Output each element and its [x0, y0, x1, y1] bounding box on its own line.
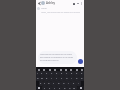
button[interactable]: 4: [49, 71, 54, 76]
button[interactable]: o: [74, 76, 79, 81]
button[interactable]: f: [51, 81, 56, 86]
staticText: Welcome to the world of full stack and t…: [40, 53, 75, 62]
staticText: Hello, we would like to invite you to jo…: [41, 11, 80, 14]
button[interactable]: i: [69, 76, 74, 81]
button[interactable]: r: [49, 76, 54, 81]
button[interactable]: s: [43, 81, 47, 86]
staticText: d: [48, 82, 50, 85]
button[interactable]: Keyboard tool: [42, 68, 45, 71]
button[interactable]: Call: [76, 2, 79, 5]
button[interactable]: v: [57, 86, 62, 90]
button[interactable]: d: [47, 81, 51, 86]
button[interactable]: Back: [37, 1, 41, 5]
button[interactable]: c: [52, 86, 57, 90]
button[interactable]: 1: [36, 71, 40, 76]
staticText: 0: [81, 72, 83, 75]
button[interactable]: Keyboard tool: [80, 68, 83, 71]
staticText: f: [53, 82, 54, 85]
button[interactable]: Welcome to the world of full stack and t…: [38, 51, 77, 64]
button[interactable]: a: [39, 81, 43, 86]
button[interactable]: Send: [78, 59, 83, 64]
button[interactable]: u: [64, 76, 69, 81]
staticText: 4: [51, 72, 53, 75]
staticText: l: [78, 82, 79, 85]
staticText: 2: [41, 72, 43, 75]
staticText: q: [37, 77, 39, 80]
button[interactable]: k: [71, 81, 76, 86]
staticText: c: [54, 87, 56, 90]
staticText: s: [44, 82, 46, 85]
staticText: Ashley: [41, 7, 47, 10]
button[interactable]: Keyboard tool: [64, 68, 67, 71]
button[interactable]: t: [54, 76, 59, 81]
button[interactable]: Keyboard tool: [69, 68, 72, 71]
staticText: b: [64, 87, 66, 90]
staticText: 3: [46, 72, 48, 75]
staticText: a: [40, 82, 42, 85]
button[interactable]: [77, 86, 84, 90]
button[interactable]: Video call: [72, 2, 75, 5]
staticText: z: [44, 87, 46, 90]
button[interactable]: j: [66, 81, 71, 86]
button[interactable]: Keyboard tool: [75, 68, 78, 71]
staticText: n: [69, 87, 71, 90]
button[interactable]: m: [72, 86, 77, 90]
button[interactable]: 5: [54, 71, 59, 76]
button[interactable]: g: [56, 81, 61, 86]
staticText: e: [46, 77, 48, 80]
staticText: o: [76, 77, 78, 80]
staticText: u: [66, 77, 68, 80]
button[interactable]: 9: [74, 71, 79, 76]
button[interactable]: 3: [44, 71, 49, 76]
staticText: 7: [66, 72, 68, 75]
button[interactable]: 7: [64, 71, 69, 76]
staticText: j: [68, 82, 69, 85]
staticText: r: [51, 77, 52, 80]
staticText: x: [49, 87, 51, 90]
staticText: m: [73, 87, 76, 90]
staticText: w: [41, 77, 43, 80]
staticText: 5: [56, 72, 58, 75]
button[interactable]: 8: [69, 71, 74, 76]
button[interactable]: h: [61, 81, 66, 86]
staticText: y: [61, 77, 63, 80]
staticText: 9: [76, 72, 78, 75]
button[interactable]: Keyboard tool: [48, 68, 51, 71]
staticText: i: [71, 77, 72, 80]
button[interactable]: x: [47, 86, 52, 90]
button[interactable]: 6: [59, 71, 64, 76]
button[interactable]: Keyboard tool: [59, 68, 62, 71]
button[interactable]: p: [79, 76, 84, 81]
staticText: h: [63, 82, 65, 85]
staticText: 6: [61, 72, 63, 75]
button[interactable]: e: [44, 76, 49, 81]
button[interactable]: Keyboard tool: [53, 68, 56, 71]
staticText: t: [56, 77, 57, 80]
staticText: v: [59, 87, 61, 90]
button[interactable]: z: [42, 86, 47, 90]
staticText: Ashley: [46, 1, 56, 5]
button[interactable]: More options: [80, 2, 83, 5]
staticText: 1: [37, 72, 39, 75]
button[interactable]: 0: [79, 71, 84, 76]
button[interactable]: n: [67, 86, 72, 90]
button[interactable]: w: [40, 76, 44, 81]
button[interactable]: [36, 86, 42, 90]
staticText: 8: [71, 72, 73, 75]
staticText: p: [81, 77, 83, 80]
staticText: g: [58, 82, 60, 85]
staticText: k: [73, 82, 75, 85]
button[interactable]: y: [59, 76, 64, 81]
button[interactable]: l: [76, 81, 81, 86]
button[interactable]: 2: [40, 71, 44, 76]
button[interactable]: Keyboard tool: [37, 68, 40, 71]
button[interactable]: b: [62, 86, 67, 90]
button[interactable]: q: [36, 76, 40, 81]
